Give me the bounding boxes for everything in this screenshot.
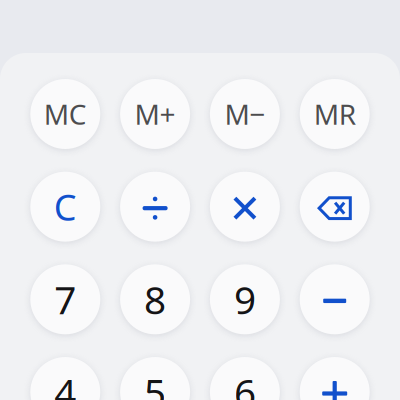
button[interactable]: 4 bbox=[30, 357, 100, 400]
button[interactable]: Minus bbox=[300, 264, 370, 334]
staticText: M+ bbox=[135, 95, 176, 133]
staticText: MC bbox=[44, 95, 87, 133]
staticText: 8 bbox=[144, 274, 166, 325]
button[interactable]: 6 bbox=[210, 357, 280, 400]
staticText: M− bbox=[224, 95, 265, 133]
staticText: 7 bbox=[54, 274, 76, 325]
staticText: C bbox=[54, 183, 77, 231]
staticText: 5 bbox=[144, 366, 166, 400]
button[interactable]: Divide bbox=[120, 172, 190, 242]
staticText: MR bbox=[314, 95, 356, 133]
button[interactable]: Delete bbox=[300, 172, 370, 242]
staticText: 9 bbox=[234, 274, 256, 325]
button[interactable]: Plus bbox=[300, 357, 370, 400]
button[interactable]: MC bbox=[30, 79, 100, 149]
button[interactable]: 9 bbox=[210, 264, 280, 334]
button[interactable]: M+ bbox=[120, 79, 190, 149]
staticText: 6 bbox=[234, 366, 256, 400]
button[interactable]: Multiply bbox=[210, 172, 280, 242]
button[interactable]: C bbox=[30, 172, 100, 242]
staticText: 4 bbox=[54, 366, 76, 400]
button[interactable]: 8 bbox=[120, 264, 190, 334]
button[interactable]: 7 bbox=[30, 264, 100, 334]
button[interactable]: M− bbox=[210, 79, 280, 149]
button[interactable]: MR bbox=[300, 79, 370, 149]
button[interactable]: 5 bbox=[120, 357, 190, 400]
